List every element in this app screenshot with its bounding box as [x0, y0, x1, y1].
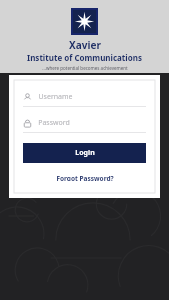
staticText: Institute of Communications — [27, 52, 142, 63]
button[interactable]: Forgot Password? — [50, 172, 120, 183]
staticText: Xavier — [69, 38, 101, 52]
button[interactable]: Login — [23, 143, 146, 163]
staticText: Forgot Password? — [56, 174, 114, 181]
staticText: Login — [75, 148, 95, 158]
staticText: ...where potential becomes achievement — [42, 65, 128, 71]
staticText: Username — [38, 92, 73, 102]
other: Password — [23, 119, 32, 128]
staticText: Password — [38, 118, 70, 128]
other: Username — [23, 93, 32, 102]
button[interactable]: Password — [23, 116, 146, 130]
button[interactable]: Username — [23, 90, 146, 104]
